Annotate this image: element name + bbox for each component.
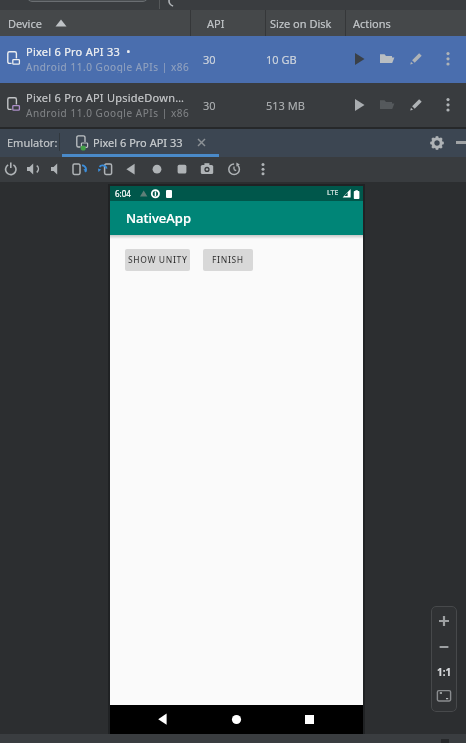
staticText: Size on Disk (270, 16, 332, 31)
button[interactable] (150, 162, 164, 176)
staticText: 30 (203, 52, 216, 67)
staticText: Android 11.0 Google APIs | x86 (26, 60, 190, 73)
button[interactable] (431, 638, 457, 656)
button[interactable] (442, 97, 454, 113)
button[interactable]: Create device (27, 0, 148, 2)
staticText: 1:1 (437, 665, 452, 679)
button[interactable] (227, 162, 241, 176)
button[interactable] (49, 162, 63, 176)
button[interactable] (26, 162, 40, 176)
staticText: NativeApp (126, 209, 191, 227)
button[interactable] (4, 162, 18, 176)
button[interactable] (352, 51, 367, 67)
button[interactable]: SHOW UNITY (125, 249, 190, 271)
button[interactable]: 1:1 (431, 662, 457, 682)
staticText: Device (8, 16, 42, 31)
button[interactable] (200, 162, 214, 176)
button[interactable] (442, 51, 454, 67)
staticText: 6:04 (115, 188, 131, 199)
staticText: API (207, 16, 225, 31)
button[interactable] (231, 714, 242, 725)
button[interactable]: FINISH (203, 249, 253, 271)
staticText: Actions (353, 16, 391, 31)
button[interactable] (379, 98, 396, 112)
button[interactable] (175, 162, 189, 176)
staticText: Android 11.0 Google APIs | x86 (26, 106, 190, 119)
staticText: 513 MB (266, 98, 305, 113)
staticText: SHOW UNITY (128, 254, 188, 266)
staticText: Emulator: (7, 135, 58, 150)
button[interactable] (429, 135, 445, 151)
button[interactable] (409, 97, 425, 113)
staticText: 10 GB (266, 52, 297, 67)
staticText: Pixel 6 Pro API 33 • (26, 44, 131, 59)
button[interactable] (157, 713, 169, 726)
button[interactable] (352, 97, 367, 113)
button[interactable] (256, 162, 270, 176)
button[interactable] (124, 162, 138, 176)
button[interactable]: Pixel 6 Pro API 33 • (0, 36, 466, 83)
button[interactable] (379, 52, 396, 66)
button[interactable] (409, 51, 425, 67)
staticText: Pixel 6 Pro API 33 (93, 135, 183, 150)
button[interactable]: Pixel 6 Pro API 33 (62, 129, 219, 157)
button[interactable]: Pixel 6 Pro API UpsideDown… (0, 83, 466, 128)
button[interactable] (97, 162, 111, 176)
button[interactable] (431, 610, 457, 632)
staticText: FINISH (212, 254, 244, 266)
staticText: Pixel 6 Pro API UpsideDown… (26, 90, 185, 105)
staticText: 30 (203, 98, 216, 113)
button[interactable] (431, 687, 457, 705)
button[interactable] (72, 162, 86, 176)
staticText: LTE (327, 188, 339, 198)
